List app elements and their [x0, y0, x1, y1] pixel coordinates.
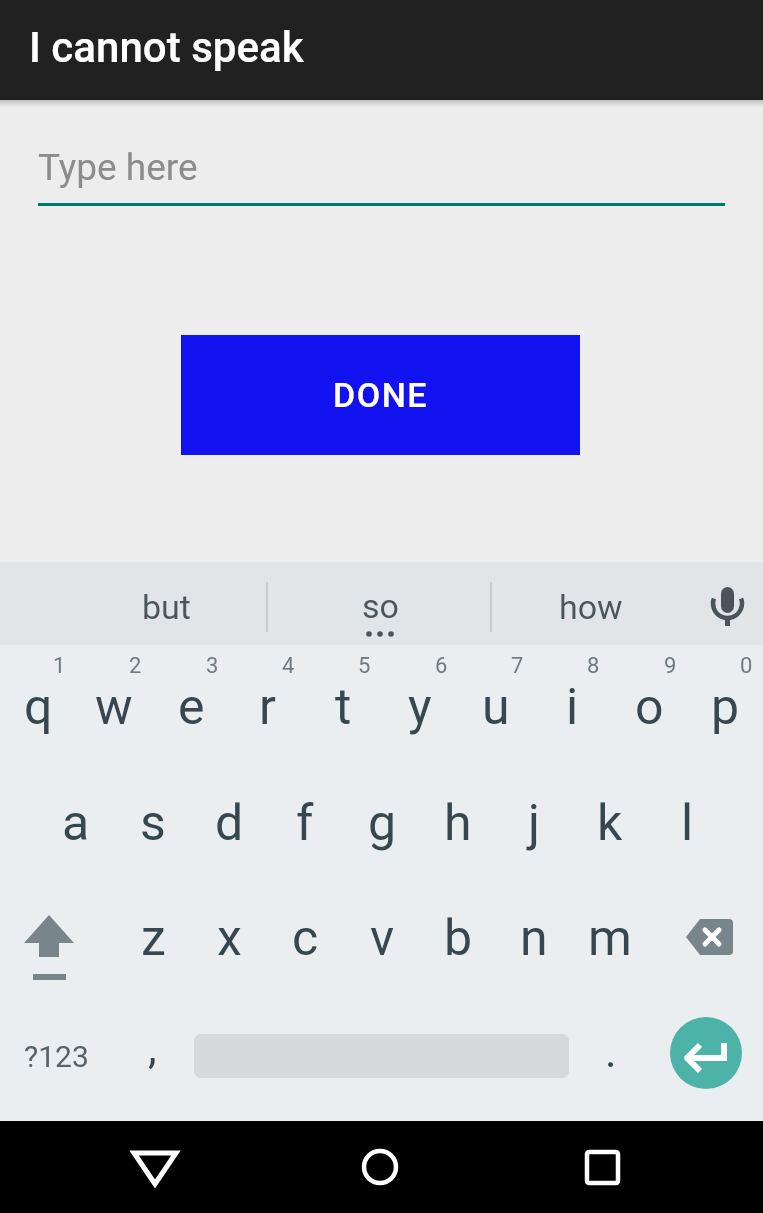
staticText: i — [566, 678, 579, 737]
staticText: b — [444, 909, 473, 968]
staticText: I cannot speak — [29, 23, 304, 72]
staticText: DONE — [333, 375, 429, 415]
button[interactable]: but — [66, 577, 266, 637]
staticText: 1 — [53, 653, 66, 679]
staticText: but — [142, 587, 191, 627]
button[interactable] — [0, 880, 114, 997]
button[interactable]: d — [191, 765, 267, 881]
button[interactable] — [649, 880, 763, 997]
staticText: 5 — [358, 653, 371, 679]
staticText: Type here — [38, 146, 198, 189]
staticText: o — [635, 678, 664, 737]
staticText: j — [528, 794, 540, 853]
button[interactable] — [350, 1137, 410, 1197]
button[interactable]: DONE — [181, 335, 580, 455]
button[interactable]: how — [501, 577, 681, 637]
button[interactable]: o — [611, 649, 687, 765]
button[interactable]: l — [649, 765, 725, 881]
button[interactable]: b — [420, 880, 496, 996]
staticText: s — [140, 794, 166, 853]
staticText: how — [559, 587, 623, 627]
button[interactable]: g — [344, 765, 420, 881]
staticText: 8 — [587, 653, 600, 679]
staticText: z — [141, 909, 166, 968]
button[interactable] — [125, 1137, 185, 1197]
staticText: 7 — [511, 653, 524, 679]
button[interactable]: c — [267, 880, 343, 996]
staticText: ?123 — [24, 1039, 89, 1074]
staticText: u — [482, 678, 510, 737]
staticText: g — [368, 794, 397, 853]
staticText: 4 — [282, 653, 295, 679]
button[interactable]: k — [572, 765, 648, 881]
button[interactable]: f — [267, 765, 343, 881]
staticText: . — [605, 1026, 617, 1078]
button[interactable]: s — [115, 765, 191, 881]
button[interactable]: z — [115, 880, 191, 996]
button[interactable]: x — [191, 880, 267, 996]
button[interactable]: . — [573, 1002, 649, 1102]
staticText: a — [62, 794, 90, 853]
staticText: x — [217, 909, 242, 968]
button[interactable]: t — [305, 649, 381, 765]
staticText: , — [148, 1022, 157, 1074]
button[interactable]: i — [534, 649, 610, 765]
staticText: c — [292, 909, 319, 968]
button[interactable] — [572, 1137, 632, 1197]
button[interactable]: n — [496, 880, 572, 996]
button[interactable] — [697, 575, 759, 637]
staticText: p — [711, 678, 740, 737]
staticText: k — [597, 794, 623, 853]
button[interactable]: j — [496, 765, 572, 881]
button[interactable]: e — [153, 649, 229, 765]
button[interactable]: h — [420, 765, 496, 881]
button[interactable]: ?123 — [1, 998, 111, 1115]
staticText: y — [408, 678, 432, 737]
staticText: w — [95, 678, 133, 737]
button[interactable]: w — [76, 649, 152, 765]
button[interactable]: q — [0, 649, 76, 765]
button[interactable]: , — [114, 998, 190, 1098]
staticText: n — [520, 909, 548, 968]
staticText: v — [370, 909, 395, 968]
button[interactable] — [670, 1017, 742, 1089]
button[interactable]: u — [458, 649, 534, 765]
staticText: 0 — [740, 653, 753, 679]
button[interactable]: r — [229, 649, 305, 765]
staticText: f — [296, 794, 314, 853]
button[interactable]: a — [38, 765, 114, 881]
staticText: q — [24, 678, 53, 737]
button[interactable]: Type here — [38, 142, 725, 192]
staticText: 6 — [435, 653, 448, 679]
button[interactable]: so — [290, 576, 470, 636]
staticText: l — [681, 794, 694, 853]
staticText: 3 — [206, 653, 219, 679]
staticText: 9 — [664, 653, 677, 679]
button[interactable]: m — [572, 880, 648, 996]
staticText: so — [362, 586, 399, 626]
staticText: e — [178, 678, 205, 737]
staticText: h — [444, 794, 472, 853]
staticText: r — [259, 678, 276, 737]
staticText: m — [588, 909, 632, 968]
staticText: 2 — [129, 653, 142, 679]
button[interactable]: y — [382, 649, 458, 765]
staticText: d — [215, 794, 244, 853]
staticText: t — [335, 678, 352, 737]
button[interactable]: p — [687, 649, 763, 765]
button[interactable]: v — [344, 880, 420, 996]
